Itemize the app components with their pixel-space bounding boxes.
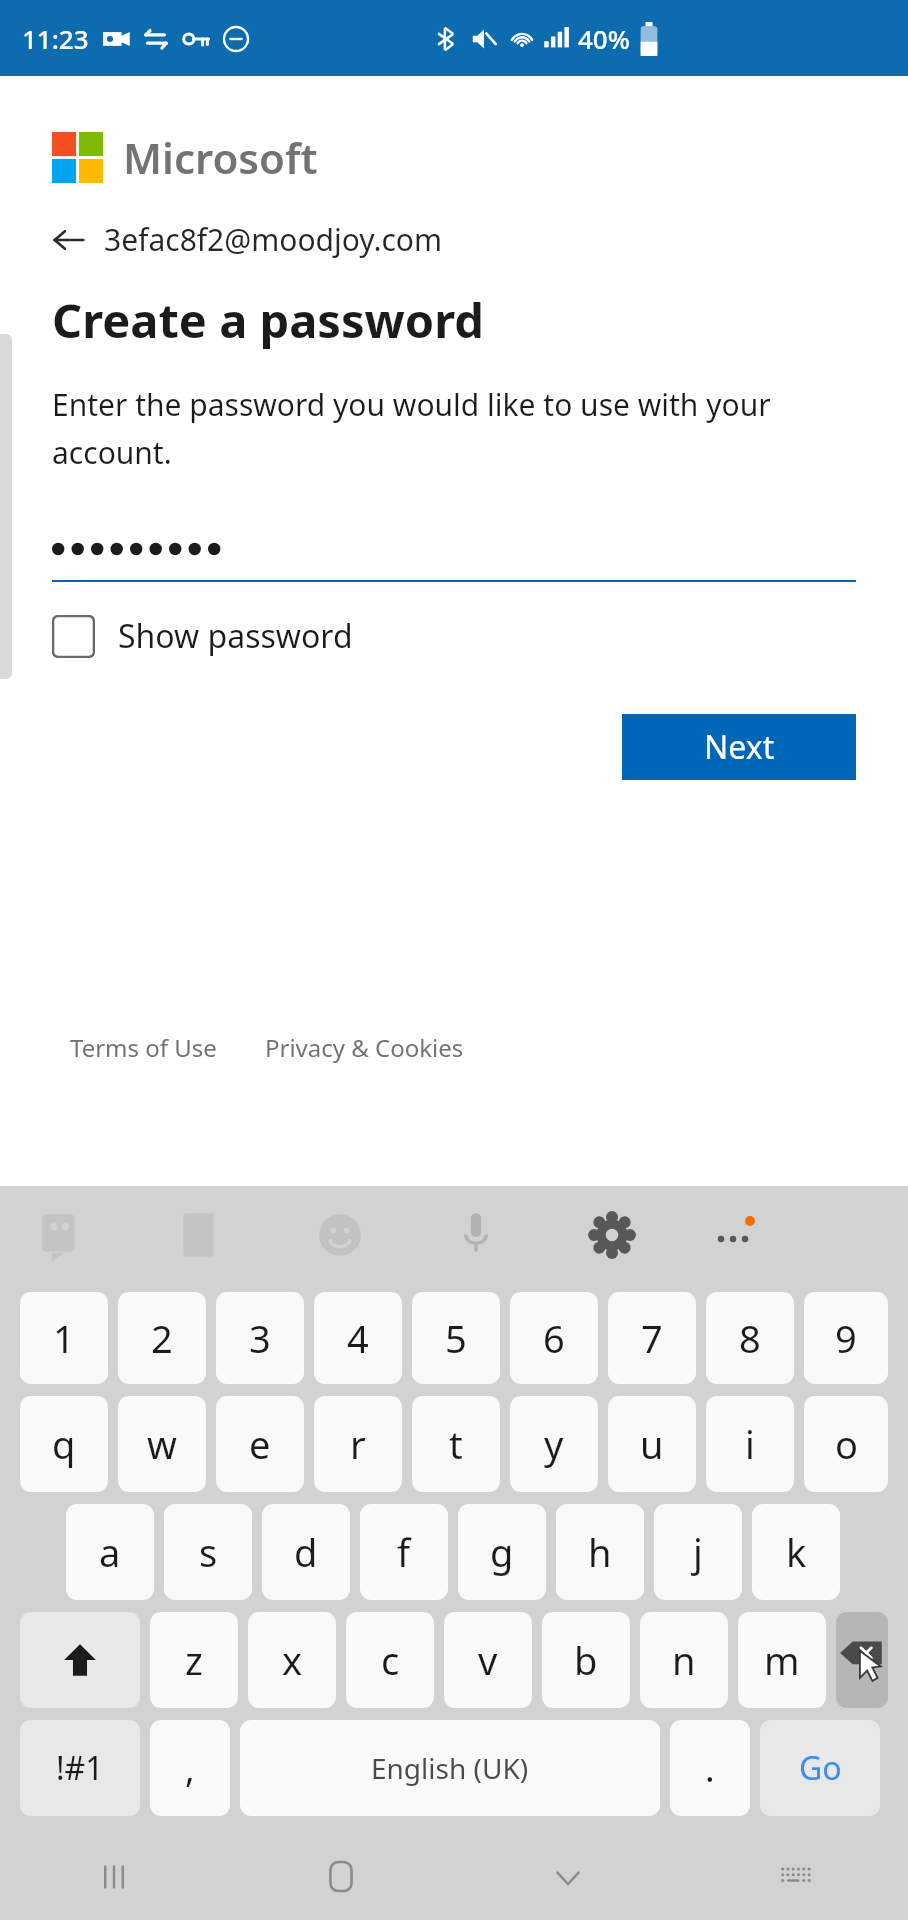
button[interactable]: e: [216, 1396, 304, 1492]
staticText: 11:23: [22, 21, 89, 56]
button[interactable]: ,: [150, 1720, 230, 1816]
staticText: .: [705, 1744, 715, 1793]
staticText: e: [249, 1418, 271, 1470]
button[interactable]: 9: [804, 1292, 888, 1384]
button[interactable]: Voice input: [450, 1209, 502, 1261]
button[interactable]: n: [640, 1612, 728, 1708]
button[interactable]: x: [248, 1612, 336, 1708]
button[interactable]: Terms of Use: [70, 1031, 217, 1064]
staticText: 3efac8f2@moodjoy.com: [104, 219, 443, 260]
button[interactable]: Hide keyboard: [454, 1834, 681, 1920]
button[interactable]: Show password: [52, 614, 353, 658]
staticText: s: [199, 1526, 218, 1578]
staticText: 9: [835, 1312, 857, 1364]
button[interactable]: Keyboard settings: [586, 1209, 638, 1261]
button[interactable]: w: [118, 1396, 206, 1492]
staticText: c: [381, 1634, 400, 1686]
staticText: 3: [249, 1312, 271, 1364]
button[interactable]: a: [66, 1504, 154, 1600]
button[interactable]: !#1: [20, 1720, 140, 1816]
staticText: m: [764, 1634, 800, 1686]
button[interactable]: r: [314, 1396, 402, 1492]
button[interactable]: Recent apps: [0, 1834, 227, 1920]
staticText: q: [52, 1418, 76, 1470]
button[interactable]: Go: [760, 1720, 880, 1816]
button[interactable]: 4: [314, 1292, 402, 1384]
staticText: o: [835, 1418, 858, 1470]
staticText: 40%: [578, 21, 630, 56]
staticText: Next: [704, 725, 775, 769]
button[interactable]: Home: [227, 1834, 454, 1920]
staticText: 8: [739, 1312, 761, 1364]
button[interactable]: English (UK): [240, 1720, 660, 1816]
button[interactable]: GIF: [174, 1209, 226, 1261]
button[interactable]: y: [510, 1396, 598, 1492]
button[interactable]: Stickers: [34, 1209, 86, 1261]
staticText: !#1: [56, 1746, 104, 1790]
button[interactable]: Key: [20, 1612, 140, 1708]
staticText: f: [397, 1526, 411, 1578]
staticText: 6: [543, 1312, 565, 1364]
button[interactable]: Emoji: [314, 1209, 366, 1261]
staticText: g: [490, 1526, 514, 1578]
button[interactable]: s: [164, 1504, 252, 1600]
button[interactable]: Switch keyboard: [681, 1834, 908, 1920]
staticText: h: [588, 1526, 612, 1578]
button[interactable]: Next: [622, 714, 856, 780]
button[interactable]: 2: [118, 1292, 206, 1384]
button[interactable]: c: [346, 1612, 434, 1708]
staticText: x: [282, 1634, 303, 1686]
staticText: Enter the password you would like to use…: [52, 384, 846, 472]
staticText: d: [294, 1526, 318, 1578]
button[interactable]: 5: [412, 1292, 500, 1384]
button[interactable]: i: [706, 1396, 794, 1492]
button[interactable]: Back: [52, 219, 443, 260]
button[interactable]: u: [608, 1396, 696, 1492]
button[interactable]: t: [412, 1396, 500, 1492]
button[interactable]: q: [20, 1396, 108, 1492]
staticText: ,: [185, 1744, 195, 1793]
button[interactable]: j: [654, 1504, 742, 1600]
staticText: i: [745, 1418, 755, 1470]
staticText: 4: [347, 1312, 369, 1364]
staticText: Microsoft: [123, 129, 318, 186]
staticText: Go: [799, 1746, 842, 1790]
staticText: t: [449, 1418, 463, 1470]
button[interactable]: 3: [216, 1292, 304, 1384]
button[interactable]: More options: [708, 1210, 758, 1260]
staticText: 7: [641, 1312, 663, 1364]
staticText: u: [640, 1418, 664, 1470]
staticText: n: [672, 1634, 696, 1686]
staticText: j: [693, 1526, 703, 1578]
button[interactable]: [52, 518, 856, 582]
staticText: Show password: [118, 614, 353, 658]
staticText: 1: [53, 1312, 75, 1364]
button[interactable]: h: [556, 1504, 644, 1600]
button[interactable]: 8: [706, 1292, 794, 1384]
button[interactable]: 1: [20, 1292, 108, 1384]
button[interactable]: o: [804, 1396, 888, 1492]
button[interactable]: k: [752, 1504, 840, 1600]
staticText: z: [185, 1634, 203, 1686]
button[interactable]: Key: [836, 1612, 888, 1708]
button[interactable]: 7: [608, 1292, 696, 1384]
staticText: k: [786, 1526, 807, 1578]
button[interactable]: g: [458, 1504, 546, 1600]
button[interactable]: 6: [510, 1292, 598, 1384]
button[interactable]: b: [542, 1612, 630, 1708]
other: Shift: [58, 1638, 102, 1682]
button[interactable]: f: [360, 1504, 448, 1600]
staticText: y: [544, 1418, 564, 1470]
button[interactable]: m: [738, 1612, 826, 1708]
button[interactable]: z: [150, 1612, 238, 1708]
staticText: 5: [445, 1312, 467, 1364]
staticText: English (UK): [371, 1749, 529, 1787]
button[interactable]: v: [444, 1612, 532, 1708]
staticText: r: [350, 1418, 366, 1470]
button[interactable]: .: [670, 1720, 750, 1816]
staticText: w: [147, 1418, 177, 1470]
staticText: a: [99, 1526, 121, 1578]
button[interactable]: Privacy & Cookies: [265, 1031, 464, 1064]
other: Back: [52, 223, 86, 257]
button[interactable]: d: [262, 1504, 350, 1600]
